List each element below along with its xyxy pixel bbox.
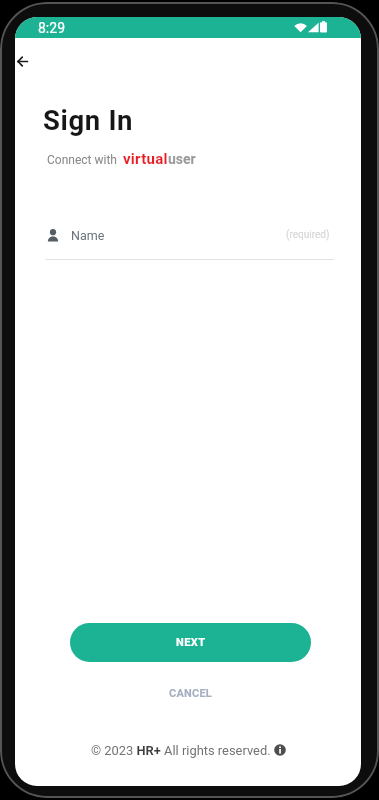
staticText: CANCEL <box>169 687 212 700</box>
button[interactable]: CANCEL <box>17 679 361 707</box>
staticText: Name <box>71 228 105 243</box>
staticText: NEXT <box>176 636 206 649</box>
staticText: Connect with virtualuser <box>47 150 196 168</box>
button[interactable] <box>15 52 35 72</box>
button[interactable]: Name <box>45 223 334 247</box>
staticText: 8:29 <box>38 20 65 36</box>
staticText: © 2023 HR+ All rights reserved. <box>91 743 274 758</box>
staticText: Sign In <box>43 104 134 136</box>
staticText: (required) <box>286 229 330 241</box>
button[interactable]: NEXT <box>70 623 311 662</box>
